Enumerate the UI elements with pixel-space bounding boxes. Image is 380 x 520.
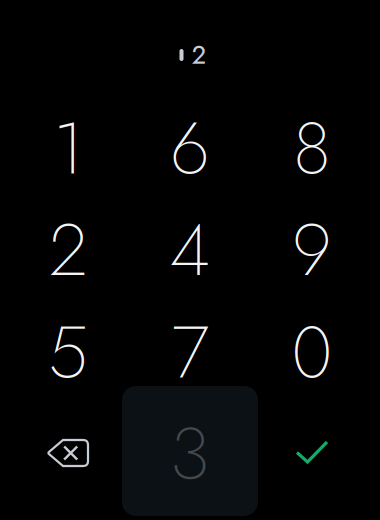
staticText: 0 xyxy=(291,300,332,404)
staticText: 7 xyxy=(171,300,208,404)
button[interactable]: 2 xyxy=(7,199,129,300)
staticText: 4 xyxy=(169,198,210,302)
staticText: 9 xyxy=(292,198,332,302)
staticText: 8 xyxy=(293,96,331,200)
button[interactable]: 5 xyxy=(7,302,129,403)
button[interactable]: 6 xyxy=(129,98,251,199)
button[interactable]: 0 xyxy=(251,302,373,403)
staticText: 6 xyxy=(170,96,210,200)
staticText: 3 xyxy=(170,402,210,506)
button[interactable]: 1 xyxy=(7,98,129,199)
staticText: 2 xyxy=(49,198,87,302)
button[interactable]: 9 xyxy=(251,199,373,300)
button[interactable]: 7 xyxy=(129,302,251,403)
button[interactable]: 8 xyxy=(251,98,373,199)
button[interactable]: Confirm xyxy=(251,401,373,502)
button[interactable]: 4 xyxy=(129,199,251,300)
staticText: 5 xyxy=(48,300,88,404)
staticText: 1 xyxy=(53,96,83,200)
button[interactable]: Delete xyxy=(7,402,129,503)
button[interactable]: 3 xyxy=(122,386,258,516)
staticText: 2 xyxy=(191,37,206,73)
